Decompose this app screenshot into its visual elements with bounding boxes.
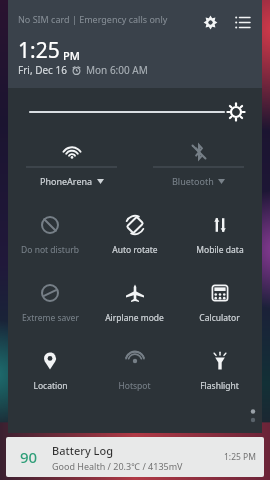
staticText: Hotspot [118, 380, 151, 392]
button[interactable]: Do not disturb [8, 202, 92, 270]
button[interactable]: Mobile data [177, 202, 262, 270]
staticText: 1:25 [18, 36, 60, 65]
button[interactable]: Extreme saver [8, 270, 92, 338]
staticText: PhoneArena [40, 175, 93, 187]
staticText: Location [33, 380, 68, 392]
button[interactable]: Brightness [8, 88, 262, 136]
staticText: Mon 6:00 AM [86, 63, 148, 77]
staticText: Fri, Dec 16 [18, 63, 67, 77]
staticText: Flashlight [200, 380, 239, 392]
button[interactable]: Location [8, 338, 92, 406]
button[interactable]: Flashlight [177, 338, 262, 406]
button[interactable]: PhoneArena [8, 136, 135, 196]
button[interactable]: Bluetooth [135, 136, 262, 196]
button[interactable]: Hotspot [92, 338, 177, 406]
staticText: Extreme saver [22, 312, 79, 324]
staticText: 1:25 PM [224, 451, 256, 463]
button[interactable]: Settings [196, 8, 224, 36]
staticText: PM [63, 48, 80, 63]
staticText: Auto rotate [112, 244, 158, 256]
staticText: Do not disturb [21, 244, 79, 256]
staticText: 90 [20, 447, 38, 467]
staticText: Mobile data [196, 244, 244, 256]
button[interactable]: Calculator [177, 270, 262, 338]
staticText: Airplane mode [105, 312, 164, 324]
staticText: Calculator [199, 312, 240, 324]
button[interactable]: Airplane mode [92, 270, 177, 338]
staticText: Good Health / 20.3℃ / 4135mV [52, 460, 183, 472]
staticText: No SIM card | Emergency calls only [18, 13, 168, 25]
staticText: Bluetooth [172, 175, 214, 187]
button[interactable]: Auto rotate [92, 202, 177, 270]
staticText: Battery Log [52, 443, 113, 458]
button[interactable]: 90 [6, 437, 264, 477]
button[interactable]: Notification list [228, 8, 256, 36]
